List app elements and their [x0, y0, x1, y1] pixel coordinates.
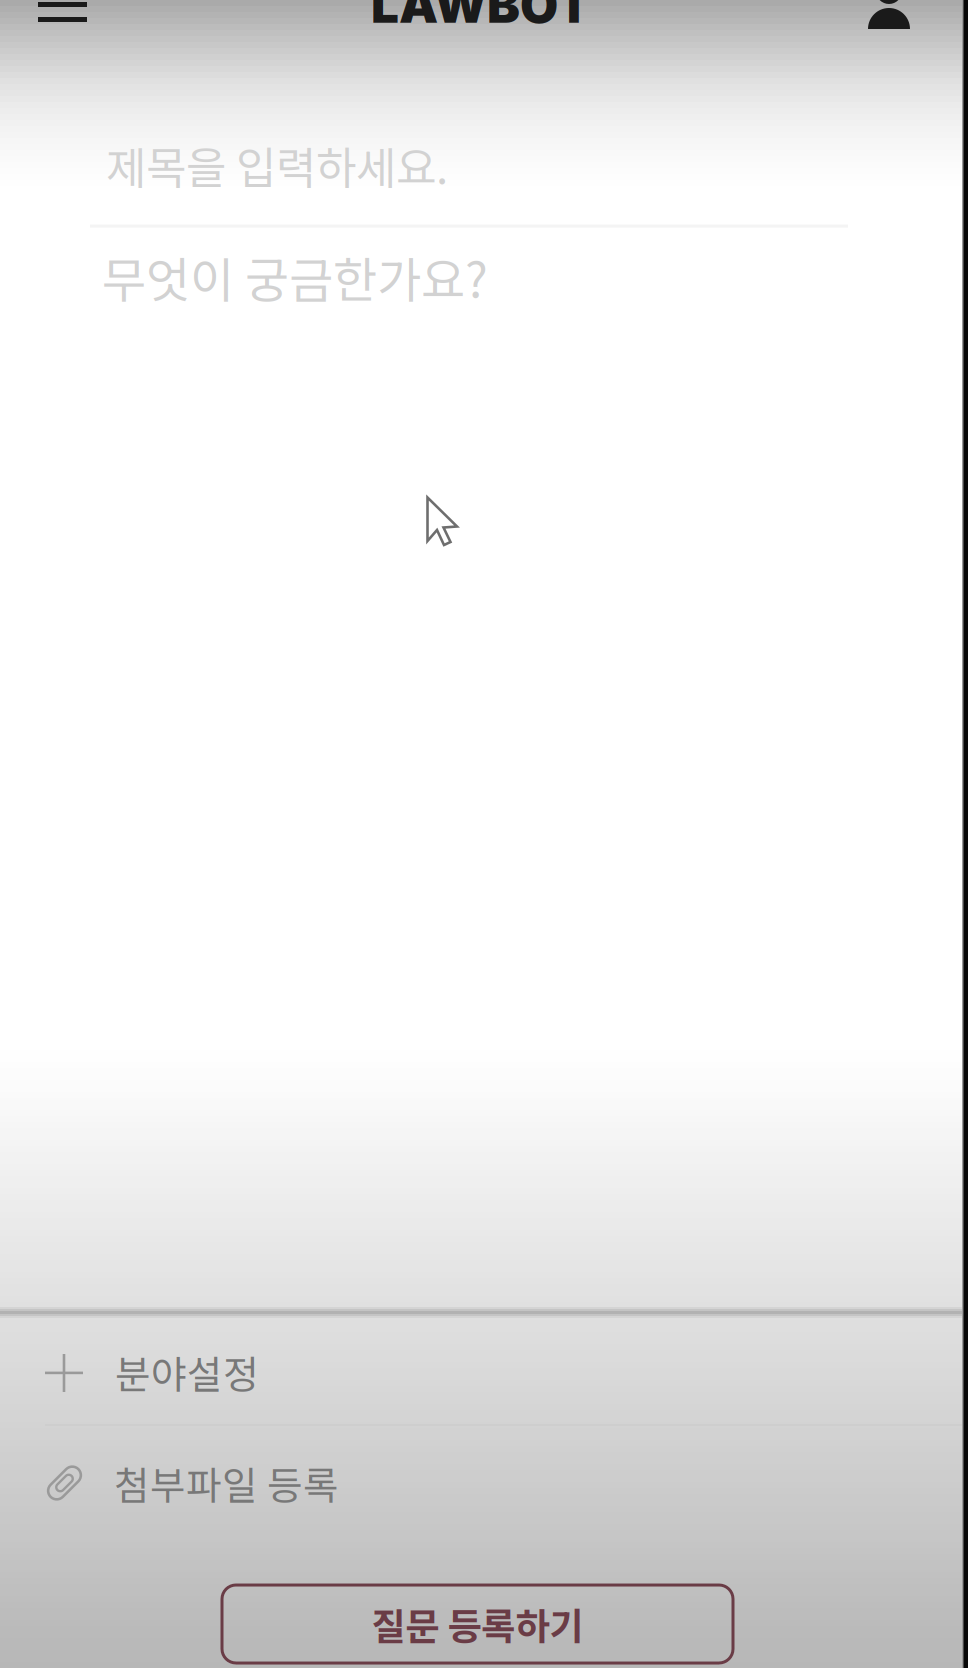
button[interactable]: 첨부파일 등록 [0, 1427, 968, 1539]
staticText: LAWBOT [371, 0, 591, 35]
button[interactable]: Account [868, 0, 910, 29]
staticText: 제목을 입력하세요. [106, 133, 448, 197]
staticText: 분야설정 [115, 1344, 259, 1400]
button[interactable]: Menu [38, 0, 87, 22]
staticText: 무엇이 궁금한가요? [102, 242, 488, 311]
staticText: 질문 등록하기 [371, 1597, 583, 1651]
button[interactable]: 질문 등록하기 [222, 1585, 733, 1663]
button[interactable]: LAWBOT [371, 0, 591, 35]
staticText: 첨부파일 등록 [114, 1455, 339, 1511]
button[interactable]: 분야설정 [0, 1316, 968, 1428]
